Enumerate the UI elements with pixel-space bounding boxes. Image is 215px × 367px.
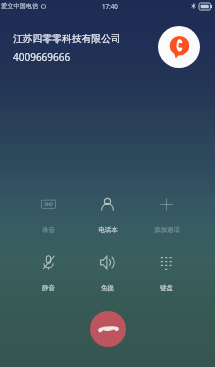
staticText: 添加通话	[154, 226, 180, 234]
button[interactable]: 免提	[78, 255, 137, 292]
button[interactable]: 电话本	[78, 197, 137, 234]
button[interactable]: Caller avatar	[158, 26, 200, 68]
staticText: 爱立中国电信	[1, 2, 39, 10]
button[interactable]: 键盘	[137, 255, 196, 292]
button[interactable]: 添加通话	[137, 197, 196, 234]
button[interactable]: End call	[90, 311, 126, 347]
staticText: 录音	[42, 226, 55, 234]
staticText: 免提	[101, 284, 114, 292]
staticText: 17:40	[102, 2, 118, 10]
staticText: 4009669666	[13, 50, 71, 64]
staticText: 电话本	[98, 226, 118, 234]
button[interactable]: 录音	[19, 197, 78, 234]
staticText: 键盘	[160, 284, 173, 292]
staticText: 静音	[42, 284, 55, 292]
button[interactable]: 静音	[19, 255, 78, 292]
staticText: 江苏四零零科技有限公司	[13, 33, 121, 45]
